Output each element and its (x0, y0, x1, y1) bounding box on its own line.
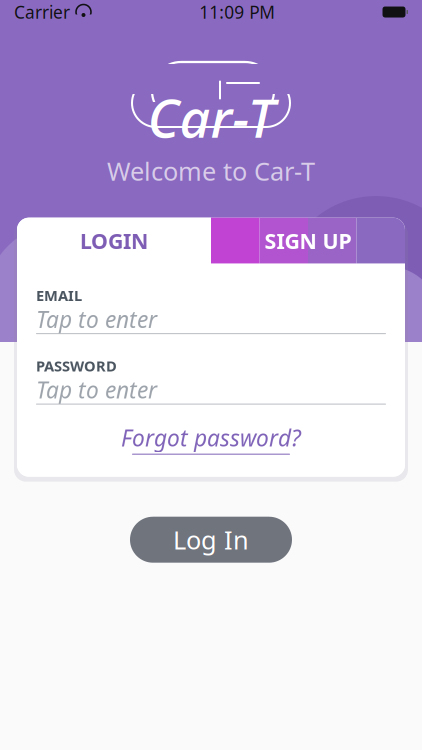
staticText: Carrier (14, 0, 70, 23)
staticText: 11:09 PM (199, 0, 275, 23)
staticText: Log In (173, 523, 249, 556)
button[interactable]: LOGIN (17, 218, 211, 264)
staticText: LOGIN (80, 226, 148, 255)
staticText: Welcome to Car-T (107, 154, 315, 188)
staticText: Forgot password? (121, 423, 301, 453)
staticText: Tap to enter (36, 374, 157, 405)
button[interactable]: Forgot password? (36, 423, 386, 455)
staticText: SIGN UP (264, 226, 351, 255)
button[interactable]: SIGN UP (211, 218, 405, 264)
staticText: Tap to enter (36, 304, 157, 334)
staticText: Car-T (147, 82, 274, 152)
button[interactable]: Log In (130, 517, 292, 563)
staticText: EMAIL (36, 286, 82, 305)
staticText: PASSWORD (36, 356, 117, 376)
button[interactable]: Tap to enter (36, 305, 386, 334)
button[interactable]: Tap to enter (36, 376, 386, 405)
